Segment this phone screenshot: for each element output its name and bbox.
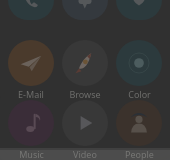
button[interactable]: Video <box>62 100 108 160</box>
button[interactable]: Camera <box>116 0 162 20</box>
staticText: People <box>125 148 154 160</box>
button[interactable]: E-Mail <box>8 40 54 100</box>
button[interactable]: Browse <box>62 40 108 100</box>
button[interactable]: Phone <box>8 0 54 20</box>
staticText: Music <box>19 148 44 160</box>
staticText: Browse <box>69 88 101 100</box>
button[interactable]: Messages <box>62 0 108 20</box>
button[interactable]: Color <box>116 40 162 100</box>
staticText: Color <box>128 88 151 100</box>
staticText: Video <box>73 148 97 160</box>
staticText: E-Mail <box>18 88 44 100</box>
button[interactable]: Music <box>8 100 54 160</box>
button[interactable]: People <box>116 100 162 160</box>
